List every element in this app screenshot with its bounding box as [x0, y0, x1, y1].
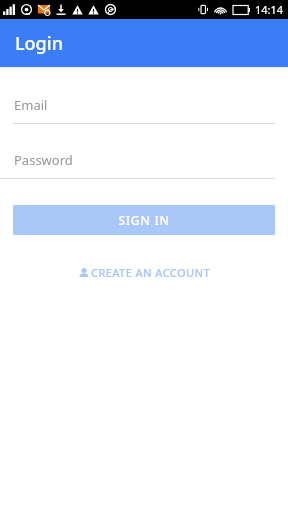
staticText: 14:14 — [255, 2, 284, 17]
staticText: SIGN IN — [118, 212, 170, 228]
staticText: Password — [14, 151, 73, 169]
button[interactable]: Password — [0, 151, 288, 179]
other: Create an account — [78, 267, 90, 279]
button[interactable]: SIGN IN — [13, 205, 275, 235]
staticText: Email — [14, 96, 48, 114]
button[interactable]: Create an account — [72, 261, 217, 284]
staticText: CREATE AN ACCOUNT — [91, 265, 211, 280]
staticText: Login — [15, 31, 63, 56]
button[interactable]: Email — [0, 96, 288, 124]
